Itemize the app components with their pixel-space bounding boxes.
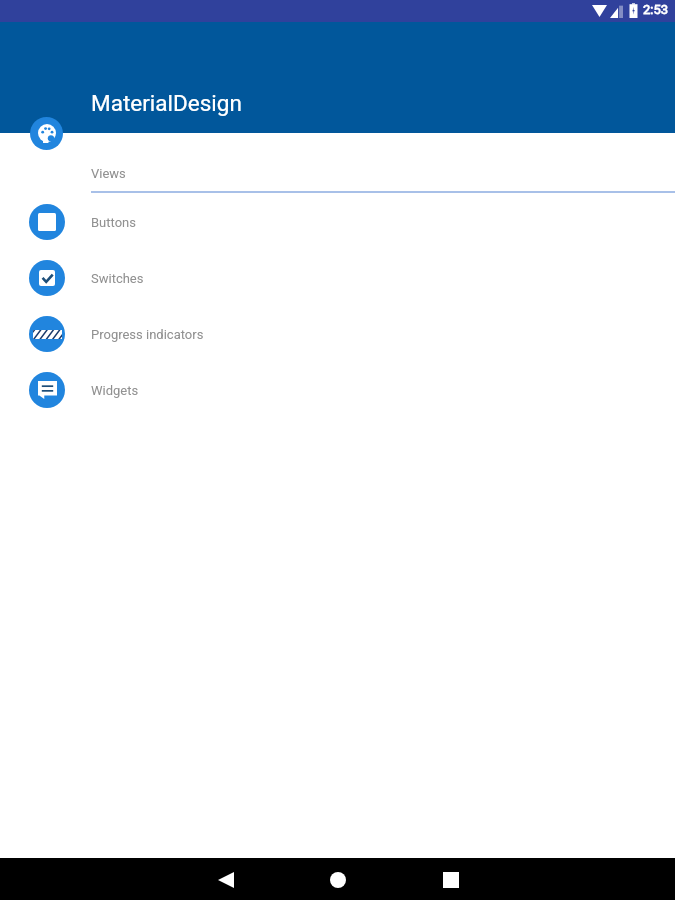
staticText: Buttons [91,215,136,230]
button[interactable]: Views [0,133,675,194]
staticText: Views [91,166,126,181]
button[interactable]: Switches [0,250,675,306]
other: Switches [29,260,65,296]
button[interactable]: Buttons [0,194,675,250]
other: Buttons [29,204,65,240]
other: Widgets [29,372,65,408]
button[interactable]: Back [218,872,234,888]
staticText: Progress indicators [91,327,204,342]
staticText: 2:53 [643,2,669,17]
button[interactable]: Widgets [0,362,675,418]
staticText: Switches [91,271,144,286]
staticText: Widgets [91,383,139,398]
staticText: MaterialDesign [91,90,242,116]
button[interactable]: Palette [30,117,63,150]
other: Progress indicators [29,316,65,352]
button[interactable]: Home [330,872,346,888]
button[interactable]: Progress indicators [0,306,675,362]
